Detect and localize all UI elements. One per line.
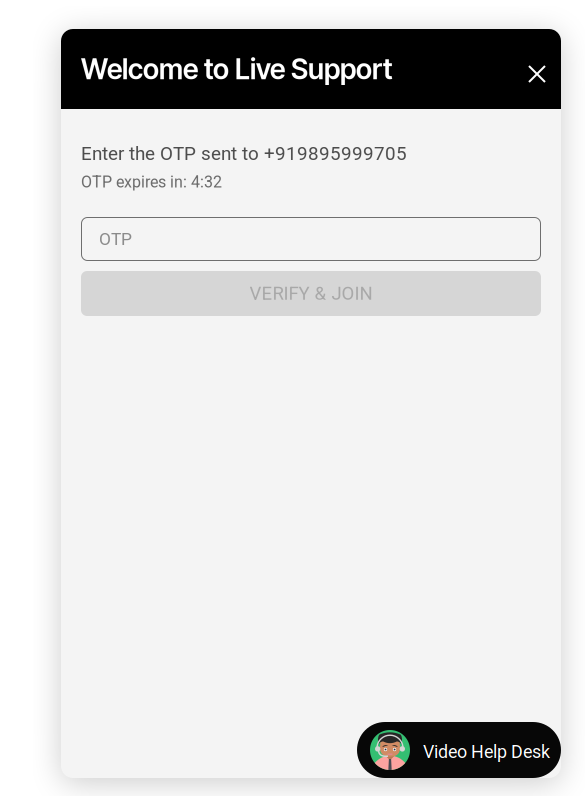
- staticText: Welcome to Live Support: [81, 52, 393, 86]
- staticText: VERIFY & JOIN: [249, 283, 372, 304]
- button[interactable]: OTP: [81, 217, 541, 261]
- staticText: OTP: [99, 229, 132, 249]
- staticText: Video Help Desk: [423, 741, 550, 762]
- button[interactable]: VERIFY & JOIN: [81, 271, 541, 316]
- button[interactable]: Close: [515, 52, 559, 96]
- staticText: Enter the OTP sent to +919895999705: [81, 142, 407, 164]
- button[interactable]: Video Help Desk: [357, 722, 561, 778]
- staticText: OTP expires in: 4:32: [81, 173, 222, 191]
